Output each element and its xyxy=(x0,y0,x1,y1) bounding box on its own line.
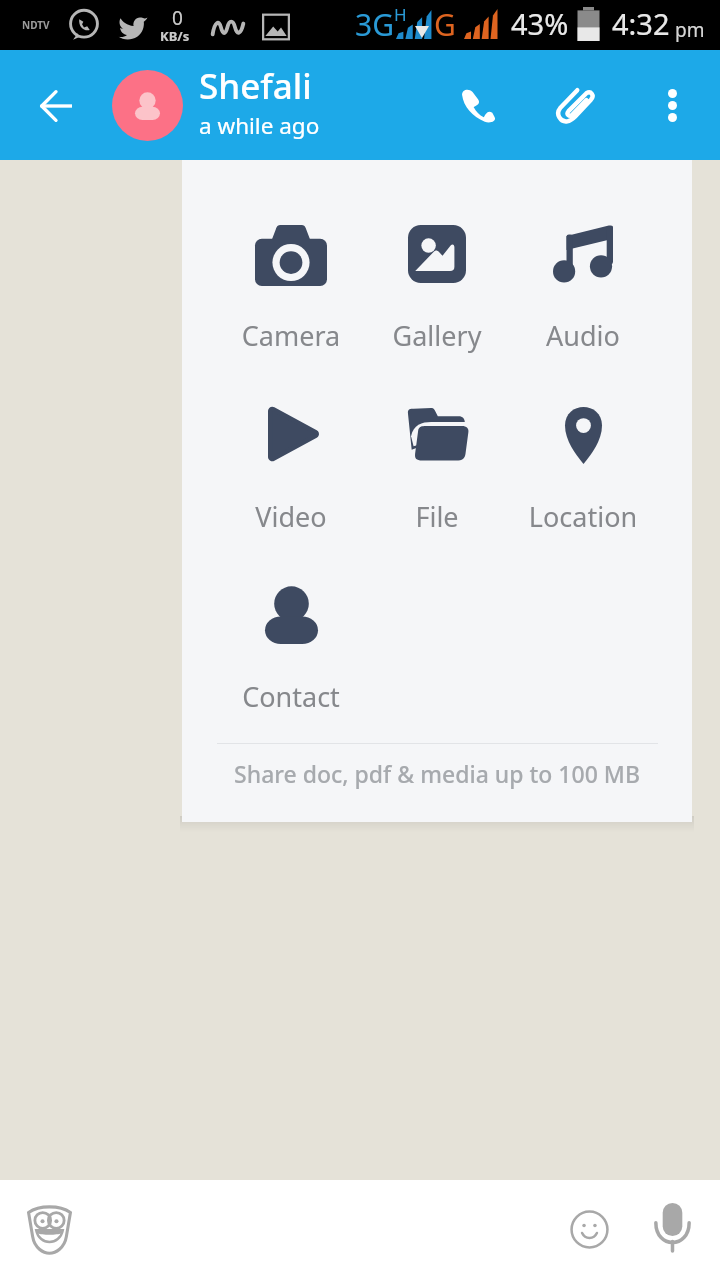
staticText: Gallery xyxy=(359,317,515,354)
staticText: 3G xyxy=(355,4,394,45)
button[interactable]: Call xyxy=(447,75,507,135)
staticText: Shefali xyxy=(199,62,312,110)
button[interactable]: Location xyxy=(505,392,661,538)
button[interactable]: Audio xyxy=(505,211,661,357)
staticText: 4:32 xyxy=(612,4,670,43)
button[interactable]: Contact xyxy=(213,572,369,718)
staticText: a while ago xyxy=(199,110,320,141)
staticText: pm xyxy=(675,17,705,43)
button[interactable]: Gallery xyxy=(359,211,515,357)
button[interactable]: Profile photo xyxy=(112,70,183,141)
staticText: Location xyxy=(505,498,661,535)
staticText: H xyxy=(394,3,407,26)
button[interactable]: File xyxy=(359,392,515,538)
staticText: Camera xyxy=(213,317,369,354)
staticText: Audio xyxy=(505,317,661,354)
button[interactable]: More options xyxy=(642,75,702,135)
staticText: 0 xyxy=(172,5,183,31)
button[interactable]: Emoji xyxy=(548,1188,629,1269)
staticText: File xyxy=(359,498,515,535)
button[interactable]: Video xyxy=(213,392,369,538)
staticText: Video xyxy=(213,498,369,535)
staticText: Share doc, pdf & media up to 100 MB xyxy=(182,758,692,789)
staticText: G xyxy=(434,4,456,45)
staticText: 43% xyxy=(511,4,569,43)
button[interactable]: Attach xyxy=(545,75,605,135)
button[interactable]: Voice message xyxy=(631,1187,712,1268)
staticText: NDTV xyxy=(22,18,50,32)
button[interactable]: Stickers xyxy=(4,1186,94,1276)
staticText: KB/s xyxy=(160,27,190,45)
button[interactable]: Camera xyxy=(213,211,369,357)
staticText: Contact xyxy=(213,678,369,715)
button[interactable]: Back xyxy=(26,76,86,136)
